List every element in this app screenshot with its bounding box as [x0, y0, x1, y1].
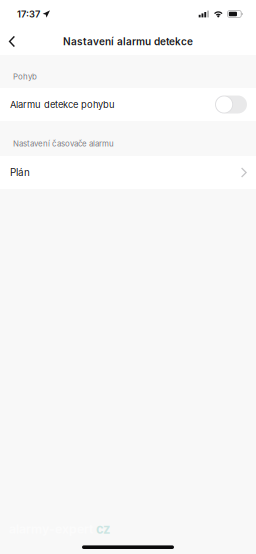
button[interactable]: Alarmu detekce pohybu	[0, 88, 256, 121]
staticText: cz	[96, 521, 110, 537]
staticText: Nastavení alarmu detekce	[63, 35, 193, 48]
button[interactable]: Back	[0, 28, 24, 55]
staticText: Alarmu detekce pohybu	[10, 99, 115, 110]
staticText: 17:37	[17, 8, 40, 20]
staticText: Nastavení časovače alarmu	[13, 139, 114, 148]
button[interactable]: Plán	[0, 156, 256, 189]
staticText: Pohyb	[13, 72, 37, 81]
staticText: Plán	[10, 166, 30, 178]
